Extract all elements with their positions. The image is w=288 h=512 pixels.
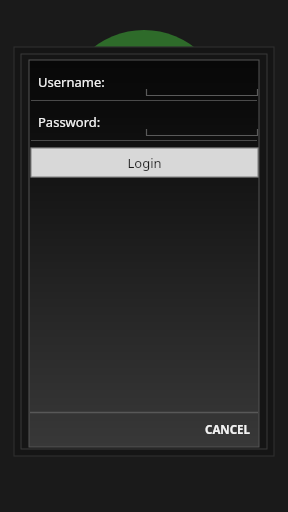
staticText: Username: <box>38 73 105 91</box>
staticText: Password: <box>38 113 101 131</box>
staticText: Login <box>127 154 162 172</box>
button[interactable]: Password: <box>31 108 143 136</box>
button[interactable]: Username: <box>31 68 143 96</box>
button[interactable]: Login <box>31 148 258 177</box>
button[interactable]: Password input field <box>146 114 258 136</box>
button[interactable]: CANCEL <box>196 416 258 444</box>
button[interactable]: Username input field <box>146 74 258 96</box>
staticText: CANCEL <box>205 422 250 438</box>
